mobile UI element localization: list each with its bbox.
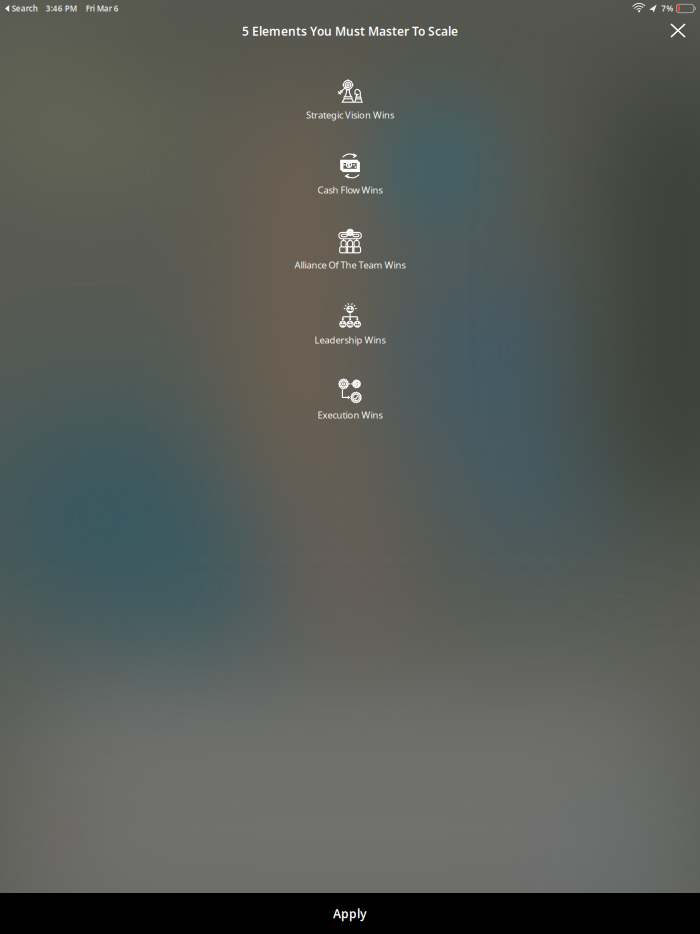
button[interactable]: Execution Wins — [200, 375, 500, 423]
staticText: 3:46 PM — [46, 3, 77, 14]
staticText: Execution Wins — [317, 409, 382, 421]
button[interactable]: Cash Flow Wins — [200, 150, 500, 198]
staticText: Leadership Wins — [314, 334, 385, 346]
staticText: 5 Elements You Must Master To Scale — [242, 23, 458, 39]
button[interactable]: Leadership Wins — [200, 300, 500, 348]
staticText: Fri Mar 6 — [86, 3, 119, 14]
staticText: Alliance Of The Team Wins — [294, 259, 405, 271]
button[interactable]: Strategic Vision Wins — [200, 75, 500, 123]
staticText: Search — [12, 3, 38, 14]
staticText: 7% — [661, 3, 673, 14]
button[interactable]: Apply — [0, 893, 700, 934]
button[interactable]: Close — [662, 15, 694, 46]
staticText: Apply — [333, 905, 367, 921]
staticText: Cash Flow Wins — [317, 184, 382, 196]
button[interactable]: Alliance Of The Team Wins — [200, 225, 500, 273]
staticText: Strategic Vision Wins — [306, 109, 394, 121]
